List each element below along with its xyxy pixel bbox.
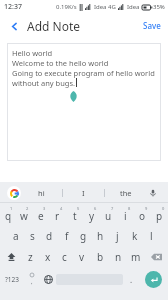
button[interactable]: Shift	[0, 246, 22, 267]
button[interactable]: 8	[117, 204, 134, 225]
button[interactable]: I	[63, 182, 104, 203]
staticText: u	[105, 209, 112, 223]
button[interactable]: 1	[0, 204, 16, 225]
staticText: a	[13, 229, 19, 243]
button[interactable]: Change language	[40, 267, 56, 292]
staticText: i	[124, 209, 127, 223]
staticText: s	[30, 229, 35, 243]
staticText: 1	[10, 206, 13, 211]
staticText: o	[139, 209, 146, 223]
staticText: b	[97, 250, 104, 264]
button[interactable]: Period	[123, 267, 139, 292]
button[interactable]: ?123	[0, 267, 24, 292]
button[interactable]: v	[73, 246, 91, 267]
button[interactable]: 5	[66, 204, 83, 225]
button[interactable]: b	[91, 246, 109, 267]
button[interactable]: a	[8, 225, 24, 246]
button[interactable]: 4	[49, 204, 66, 225]
button[interactable]: f	[58, 225, 75, 246]
button[interactable]: k	[126, 225, 143, 246]
button[interactable]: the	[105, 182, 146, 203]
staticText: r	[55, 209, 60, 223]
staticText: z	[28, 250, 33, 264]
staticText: Add Note	[27, 18, 81, 34]
staticText: 8	[128, 206, 131, 211]
staticText: 5	[77, 206, 80, 211]
button[interactable]: g	[75, 225, 92, 246]
button[interactable]: Enter	[145, 271, 162, 288]
staticText: Save	[143, 20, 161, 31]
button[interactable]: Backspace	[145, 246, 168, 267]
staticText: Idea	[127, 3, 140, 11]
button[interactable]: m	[127, 246, 145, 267]
button[interactable]: x	[39, 246, 56, 267]
staticText: h	[97, 229, 104, 243]
staticText: e	[38, 209, 44, 223]
staticText: 0.19K/s	[56, 3, 77, 11]
button[interactable]: Back	[5, 17, 23, 35]
button[interactable]: d	[41, 225, 58, 246]
staticText: w	[20, 209, 28, 223]
button[interactable]: Hello world	[7, 43, 161, 161]
button[interactable]: 2	[16, 204, 32, 225]
button[interactable]: n	[109, 246, 127, 267]
staticText: ?123	[5, 275, 19, 284]
staticText: without any bugs.	[12, 78, 76, 88]
staticText: Hello world	[12, 48, 53, 58]
staticText: 6	[94, 206, 97, 211]
staticText: k	[132, 229, 138, 243]
staticText: f	[65, 229, 69, 243]
staticText: 12:37	[4, 2, 22, 12]
button[interactable]: 7	[100, 204, 117, 225]
staticText: g	[80, 229, 87, 243]
button[interactable]: 3	[32, 204, 49, 225]
staticText: c	[62, 250, 67, 264]
staticText: I	[82, 188, 85, 198]
staticText: Welcome to the hello world	[12, 58, 109, 68]
button[interactable]: 9	[134, 204, 151, 225]
staticText: x	[45, 250, 51, 264]
staticText: d	[46, 229, 53, 243]
button[interactable]: s	[24, 225, 41, 246]
staticText: p	[156, 209, 163, 223]
button[interactable]: Voice input	[146, 186, 160, 200]
button[interactable]: hi	[21, 182, 62, 203]
staticText: hi	[38, 188, 45, 198]
staticText: y	[89, 209, 95, 223]
staticText: n	[115, 250, 122, 264]
staticText: Idea 4G	[94, 3, 116, 11]
staticText: .	[130, 274, 133, 285]
staticText: m	[131, 250, 141, 264]
staticText: the	[120, 188, 132, 198]
button[interactable]: 0	[151, 204, 168, 225]
staticText: v	[79, 250, 85, 264]
button[interactable]: Google	[7, 186, 21, 200]
staticText: 4	[60, 206, 63, 211]
staticText: l	[150, 229, 153, 243]
button[interactable]: 6	[83, 204, 100, 225]
button[interactable]: j	[109, 225, 126, 246]
staticText: j	[116, 229, 119, 243]
button[interactable]: h	[92, 225, 109, 246]
staticText: 0	[162, 206, 165, 211]
staticText: 3	[43, 206, 46, 211]
staticText: 9	[145, 206, 148, 211]
button[interactable]: c	[56, 246, 73, 267]
staticText: Going to execute program of hello world	[12, 68, 155, 78]
staticText: 35%	[153, 3, 165, 11]
staticText: 7	[111, 206, 114, 211]
staticText: 2	[26, 206, 29, 211]
button[interactable]: Comma	[24, 267, 40, 292]
staticText: q	[5, 209, 12, 223]
button[interactable]: z	[22, 246, 39, 267]
button[interactable]: l	[143, 225, 160, 246]
staticText: t	[73, 209, 77, 223]
button[interactable]: Save	[136, 16, 168, 35]
staticText: ,	[31, 278, 33, 286]
